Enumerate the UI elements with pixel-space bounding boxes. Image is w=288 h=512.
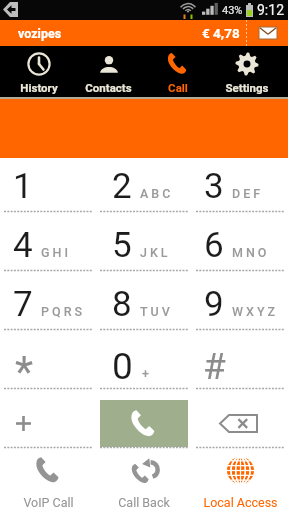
staticText: History [20,81,58,94]
staticText: 0 [112,345,133,388]
staticText: Call [168,81,188,94]
button[interactable]: Backspace [192,389,288,447]
button[interactable]: Contacts [74,46,143,97]
staticText: VoIP Call [23,495,74,510]
button[interactable]: * [0,330,96,388]
staticText: Local Access [203,495,278,510]
button[interactable]: Call [143,46,212,97]
staticText: Settings [225,81,269,94]
staticText: * [15,347,34,396]
button[interactable]: History [4,46,74,97]
staticText: 2 [112,166,132,207]
staticText: 5 [112,225,132,266]
staticText: 6 [204,225,224,266]
button[interactable]: 1 [0,158,96,211]
button[interactable]: Local Access [192,448,288,512]
button[interactable]: VoIP Call [0,448,96,512]
button[interactable]: Messages [251,20,285,46]
staticText: WXYZ [232,304,279,319]
button[interactable]: 5 [96,212,192,270]
staticText: vozipes [18,26,62,41]
staticText: 43% [222,4,243,17]
staticText: GHI [41,245,71,260]
staticText: Call Back [118,495,170,510]
staticText: TUV [140,304,173,319]
staticText: PQRS [41,304,85,319]
staticText: MNO [232,245,270,260]
button[interactable]: Add [0,389,96,447]
staticText: DEF [232,186,264,201]
button[interactable]: Settings [212,46,281,97]
staticText: ABC [140,186,174,201]
button[interactable]: 4 [0,212,96,270]
button[interactable]: 0 [96,330,192,388]
button[interactable]: 9 [192,271,288,329]
staticText: # [203,345,226,388]
button[interactable]: 8 [96,271,192,329]
staticText: JKL [140,245,171,260]
button[interactable]: Call [100,400,188,447]
staticText: Contacts [85,81,132,94]
button[interactable]: Call Back [96,448,192,512]
button[interactable]: 6 [192,212,288,270]
staticText: 8 [112,284,132,325]
staticText: 7 [13,284,33,325]
staticText: 3 [204,166,224,207]
staticText: + [142,366,152,381]
button[interactable]: € 4,78 [202,25,240,41]
button[interactable]: 7 [0,271,96,329]
button[interactable]: # [192,330,288,388]
staticText: 4 [13,225,33,266]
staticText: 9 [204,284,224,325]
button[interactable]: 2 [96,158,192,211]
staticText: 9:12 [257,2,284,18]
staticText: 1 [13,166,33,207]
button[interactable]: 3 [192,158,288,211]
